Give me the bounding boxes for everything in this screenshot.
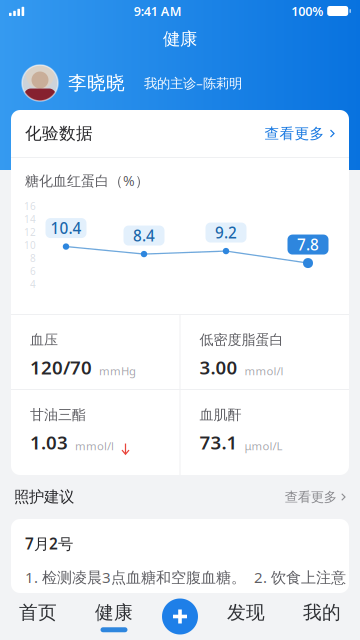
staticText: 照护建议 [14, 487, 74, 507]
staticText: 健康 [95, 601, 133, 624]
staticText: 血肌酐 [199, 406, 241, 424]
staticText: 9:41 AM [134, 2, 182, 20]
staticText: mmHg [99, 363, 136, 378]
staticText: 1. 检测凌晨3点血糖和空腹血糖。 2. 饮食上注意 [25, 567, 346, 587]
button[interactable]: 首页 [0, 593, 76, 640]
staticText: 李晓晓 [68, 71, 125, 95]
staticText: 73.1 [199, 430, 237, 455]
staticText: 血压 [30, 331, 58, 349]
button[interactable]: 发现 [208, 593, 284, 640]
staticText: 发现 [227, 601, 265, 624]
button[interactable]: 新增 [152, 593, 208, 640]
staticText: 我的 [303, 601, 341, 624]
staticText: 14 [24, 212, 36, 226]
staticText: mmol/l [244, 363, 283, 378]
staticText: 首页 [19, 601, 57, 624]
button[interactable]: 健康 [76, 593, 152, 640]
staticText: 查看更多 [285, 489, 337, 505]
button[interactable]: 查看更多 [285, 489, 346, 505]
staticText: 低密度脂蛋白 [199, 331, 283, 349]
staticText: 8.4 [133, 225, 155, 246]
staticText: 3.00 [199, 355, 237, 380]
staticText: 我的主诊–陈莉明 [144, 74, 242, 92]
staticText: 8 [30, 251, 36, 265]
staticText: 4 [30, 277, 36, 291]
staticText: 120/70 [30, 355, 92, 380]
staticText: 化验数据 [25, 123, 93, 144]
staticText: 甘油三酯 [30, 406, 86, 424]
staticText: mmol/l [75, 438, 114, 453]
staticText: 9.2 [215, 222, 237, 243]
staticText: 7月2号 [25, 533, 73, 554]
button[interactable]: 我的 [284, 593, 360, 640]
staticText: 健康 [163, 28, 197, 50]
staticText: 6 [30, 264, 36, 278]
staticText: 查看更多 [264, 124, 324, 143]
staticText: 16 [24, 199, 36, 213]
staticText: 1.03 [30, 430, 68, 455]
staticText: 7.8 [297, 234, 319, 255]
staticText: 10 [24, 238, 36, 252]
staticText: 12 [24, 225, 36, 239]
staticText: 100% [291, 2, 323, 20]
staticText: 10.4 [50, 218, 81, 238]
staticText: μmol/L [244, 438, 282, 453]
staticText: 糖化血红蛋白（%） [25, 171, 149, 190]
button[interactable]: 化验数据 [11, 110, 349, 157]
